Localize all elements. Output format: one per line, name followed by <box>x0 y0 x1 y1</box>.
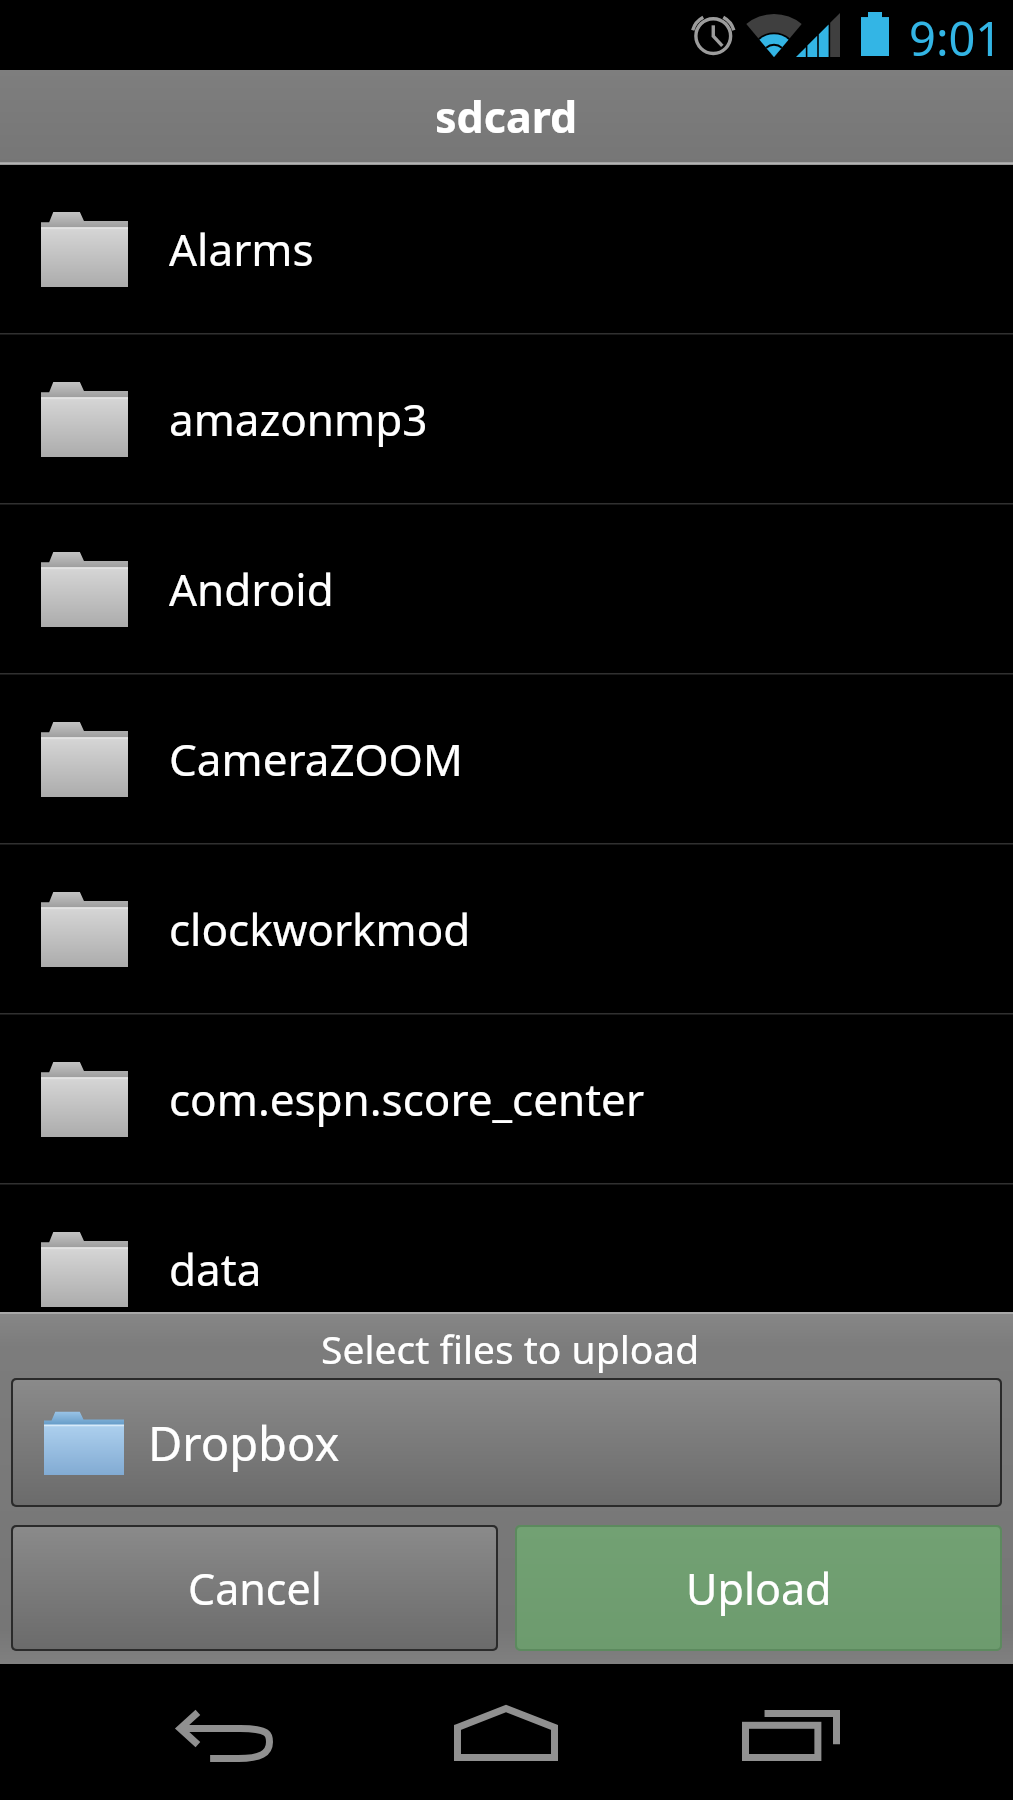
staticText: com.espn.score_center <box>169 1069 645 1129</box>
staticText: data <box>169 1239 262 1299</box>
staticText: amazonmp3 <box>169 389 428 449</box>
button[interactable]: clockworkmod <box>0 845 1013 1013</box>
staticText: clockworkmod <box>169 899 471 959</box>
staticText: Alarms <box>169 219 314 279</box>
button[interactable]: Back <box>177 1710 273 1762</box>
staticText: 9:01 <box>909 6 1003 70</box>
button[interactable]: Upload <box>517 1527 1000 1649</box>
button[interactable]: CameraZOOM <box>0 675 1013 843</box>
staticText: CameraZOOM <box>169 729 463 789</box>
button[interactable]: Android <box>0 505 1013 673</box>
staticText: Dropbox <box>148 1411 340 1475</box>
button[interactable]: Recent apps <box>742 1710 840 1761</box>
button[interactable]: Home <box>454 1705 558 1761</box>
staticText: Android <box>169 559 334 619</box>
button[interactable]: Cancel <box>13 1527 496 1649</box>
staticText: Cancel <box>188 1559 322 1618</box>
button[interactable]: Dropbox <box>13 1380 1000 1505</box>
button[interactable]: amazonmp3 <box>0 335 1013 503</box>
button[interactable]: Alarms <box>0 165 1013 333</box>
button[interactable]: data <box>0 1185 1013 1353</box>
staticText: sdcard <box>435 87 578 146</box>
staticText: Upload <box>686 1559 832 1618</box>
button[interactable]: com.espn.score_center <box>0 1015 1013 1183</box>
staticText: Select files to upload <box>321 1322 700 1375</box>
